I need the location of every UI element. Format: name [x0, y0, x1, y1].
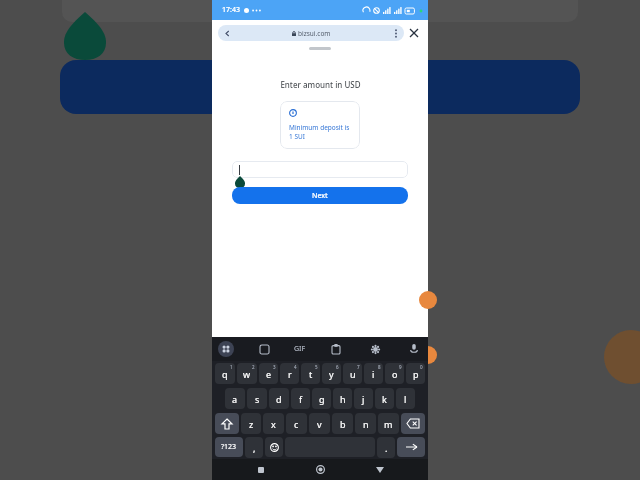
- button[interactable]: h: [333, 388, 352, 409]
- staticText: x: [271, 418, 276, 430]
- button[interactable]: ,: [245, 437, 263, 458]
- staticText: Minimum deposit is 1 SUI: [289, 123, 351, 141]
- staticText: g: [319, 393, 325, 405]
- staticText: 1: [230, 364, 233, 370]
- button[interactable]: b: [332, 413, 353, 434]
- button[interactable]: Clipboard: [327, 340, 345, 358]
- button[interactable]: Shift: [215, 413, 239, 434]
- staticText: GIF: [294, 344, 306, 354]
- button[interactable]: Settings: [366, 340, 384, 358]
- staticText: i: [372, 368, 375, 380]
- staticText: 7: [357, 364, 360, 370]
- button[interactable]: p: [406, 363, 425, 384]
- staticText: r: [288, 368, 292, 380]
- button[interactable]: z: [241, 413, 261, 434]
- button[interactable]: a: [225, 388, 245, 409]
- staticText: h: [340, 393, 346, 405]
- button[interactable]: [232, 161, 408, 178]
- button[interactable]: c: [286, 413, 307, 434]
- button[interactable]: Edit: [419, 346, 437, 364]
- button[interactable]: y: [322, 363, 341, 384]
- staticText: q: [222, 368, 228, 380]
- button[interactable]: g: [312, 388, 331, 409]
- button[interactable]: d: [269, 388, 289, 409]
- staticText: e: [266, 368, 272, 380]
- button[interactable]: e: [259, 363, 278, 384]
- button[interactable]: Emoji: [265, 437, 283, 457]
- button[interactable]: Support chat: [419, 291, 437, 309]
- staticText: w: [243, 368, 251, 380]
- staticText: k: [382, 393, 387, 405]
- staticText: j: [362, 393, 365, 405]
- staticText: a: [232, 393, 238, 405]
- staticText: .: [385, 442, 388, 454]
- button[interactable]: u: [343, 363, 362, 384]
- staticText: s: [255, 393, 260, 405]
- button[interactable]: Home: [310, 459, 331, 480]
- staticText: 4: [294, 364, 297, 370]
- button[interactable]: Close: [404, 25, 424, 41]
- staticText: 6: [336, 364, 339, 370]
- button[interactable]: Minimum deposit is 1 SUI: [289, 109, 351, 141]
- staticText: Next: [312, 191, 328, 201]
- button[interactable]: q: [215, 363, 235, 384]
- staticText: ?123: [221, 442, 237, 452]
- button[interactable]: x: [263, 413, 284, 434]
- button[interactable]: GIF: [294, 344, 306, 354]
- staticText: y: [329, 368, 334, 380]
- button[interactable]: w: [237, 363, 257, 384]
- button[interactable]: s: [247, 388, 267, 409]
- staticText: u: [350, 368, 356, 380]
- staticText: t: [309, 368, 313, 380]
- button[interactable]: t: [301, 363, 320, 384]
- button[interactable]: i: [364, 363, 383, 384]
- staticText: 9: [399, 364, 402, 370]
- button[interactable]: Hide keyboard: [369, 459, 390, 480]
- button[interactable]: .: [377, 437, 395, 458]
- button[interactable]: Enter: [397, 437, 425, 457]
- staticText: 2: [252, 364, 255, 370]
- staticText: f: [299, 393, 303, 405]
- button[interactable]: Backspace: [401, 413, 425, 434]
- staticText: b: [340, 418, 346, 430]
- staticText: n: [363, 418, 369, 430]
- button[interactable]: k: [375, 388, 394, 409]
- staticText: 3: [273, 364, 276, 370]
- button[interactable]: Voice input: [405, 340, 423, 358]
- button[interactable]: j: [354, 388, 373, 409]
- staticText: bizsui.com: [298, 29, 331, 38]
- staticText: l: [404, 393, 407, 405]
- button[interactable]: Keyboard modes: [218, 341, 234, 357]
- button[interactable]: m: [378, 413, 399, 434]
- button[interactable]: bizsui.com: [218, 25, 404, 41]
- staticText: d: [276, 393, 282, 405]
- button[interactable]: Next: [232, 187, 408, 204]
- button[interactable]: v: [309, 413, 330, 434]
- staticText: c: [294, 418, 299, 430]
- staticText: 17:43: [222, 5, 240, 15]
- staticText: 8: [378, 364, 381, 370]
- staticText: p: [413, 368, 419, 380]
- button[interactable]: f: [291, 388, 310, 409]
- staticText: 0: [420, 364, 423, 370]
- staticText: ,: [253, 442, 256, 454]
- button[interactable]: ?123: [215, 437, 243, 457]
- staticText: 5: [315, 364, 318, 370]
- staticText: Enter amount in USD: [280, 79, 361, 90]
- button[interactable]: Stickers: [255, 340, 273, 358]
- staticText: z: [249, 418, 254, 430]
- button[interactable]: l: [396, 388, 415, 409]
- staticText: v: [317, 418, 322, 430]
- button[interactable]: r: [280, 363, 299, 384]
- button[interactable]: n: [355, 413, 376, 434]
- button[interactable]: o: [385, 363, 404, 384]
- staticText: m: [384, 418, 393, 430]
- button[interactable]: Recents: [250, 459, 271, 480]
- staticText: o: [392, 368, 398, 380]
